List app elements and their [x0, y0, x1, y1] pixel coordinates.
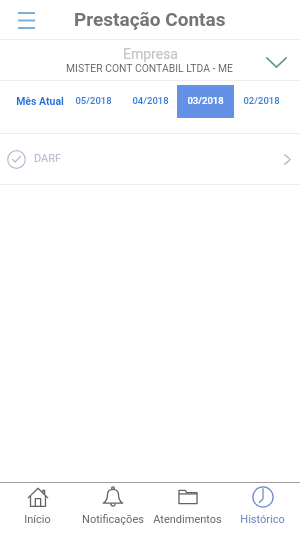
button[interactable]: Abrir menu: [13, 7, 39, 33]
button[interactable]: 05/2018: [65, 85, 121, 118]
button[interactable]: Histórico: [225, 483, 300, 526]
button[interactable]: Trocar empresa: [261, 47, 291, 77]
staticText: Notificações: [82, 513, 144, 526]
button[interactable]: Atendimentos: [150, 483, 225, 526]
button[interactable]: 04/2018: [122, 85, 178, 118]
button[interactable]: Mês Atual: [5, 85, 75, 118]
button[interactable]: Empresa: [0, 40, 300, 81]
staticText: Prestação Contas: [74, 8, 226, 30]
staticText: MISTER CONT CONTABIL LTDA - ME: [66, 62, 234, 74]
staticText: 05/2018: [75, 95, 112, 106]
staticText: Atendimentos: [153, 513, 222, 526]
staticText: 04/2018: [132, 95, 169, 106]
button[interactable]: 02/2018: [233, 85, 289, 118]
staticText: Mês Atual: [16, 95, 64, 107]
staticText: Histórico: [240, 513, 285, 526]
button[interactable]: Notificações: [75, 483, 150, 526]
button[interactable]: DARF: [0, 134, 300, 184]
staticText: Início: [24, 513, 51, 526]
button[interactable]: 03/2018: [177, 85, 234, 118]
other: Abrir DARF: [277, 149, 297, 169]
staticText: 03/2018: [187, 95, 224, 106]
staticText: 02/2018: [243, 95, 280, 106]
button[interactable]: Início: [0, 483, 75, 526]
staticText: DARF: [34, 152, 62, 165]
staticText: Empresa: [123, 46, 178, 62]
